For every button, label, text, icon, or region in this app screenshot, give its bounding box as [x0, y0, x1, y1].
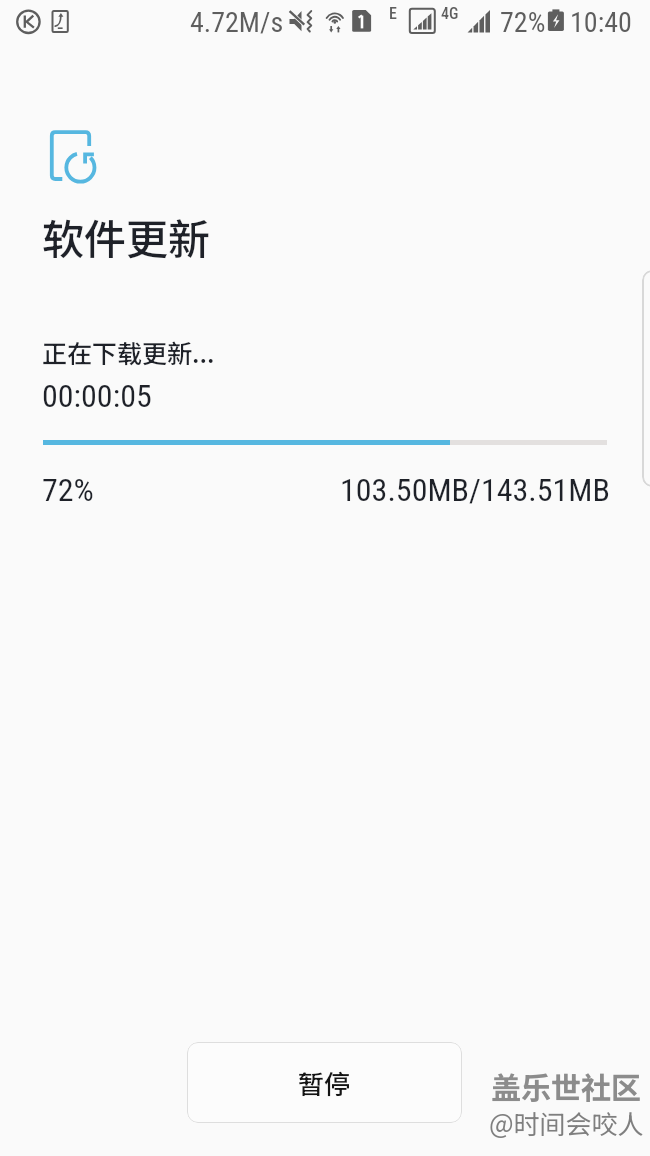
- staticText: 103.50MB/143.51MB: [340, 471, 610, 509]
- staticText: 72%: [42, 471, 94, 509]
- button[interactable]: Edge panel handle: [642, 270, 650, 487]
- staticText: @时间会咬人: [489, 1104, 644, 1142]
- button[interactable]: 暂停: [187, 1042, 462, 1123]
- other: Software update: [46, 126, 102, 188]
- staticText: 4G: [441, 4, 459, 23]
- staticText: 正在下载更新...: [42, 334, 215, 370]
- staticText: 72%: [500, 6, 546, 39]
- staticText: 盖乐世社区: [491, 1064, 641, 1107]
- staticText: 软件更新: [42, 206, 211, 267]
- staticText: 4.72M/s: [190, 6, 284, 39]
- staticText: 00:00:05: [42, 377, 152, 415]
- staticText: E: [389, 4, 397, 23]
- staticText: 10:40: [570, 6, 632, 39]
- staticText: 暂停: [298, 1064, 351, 1102]
